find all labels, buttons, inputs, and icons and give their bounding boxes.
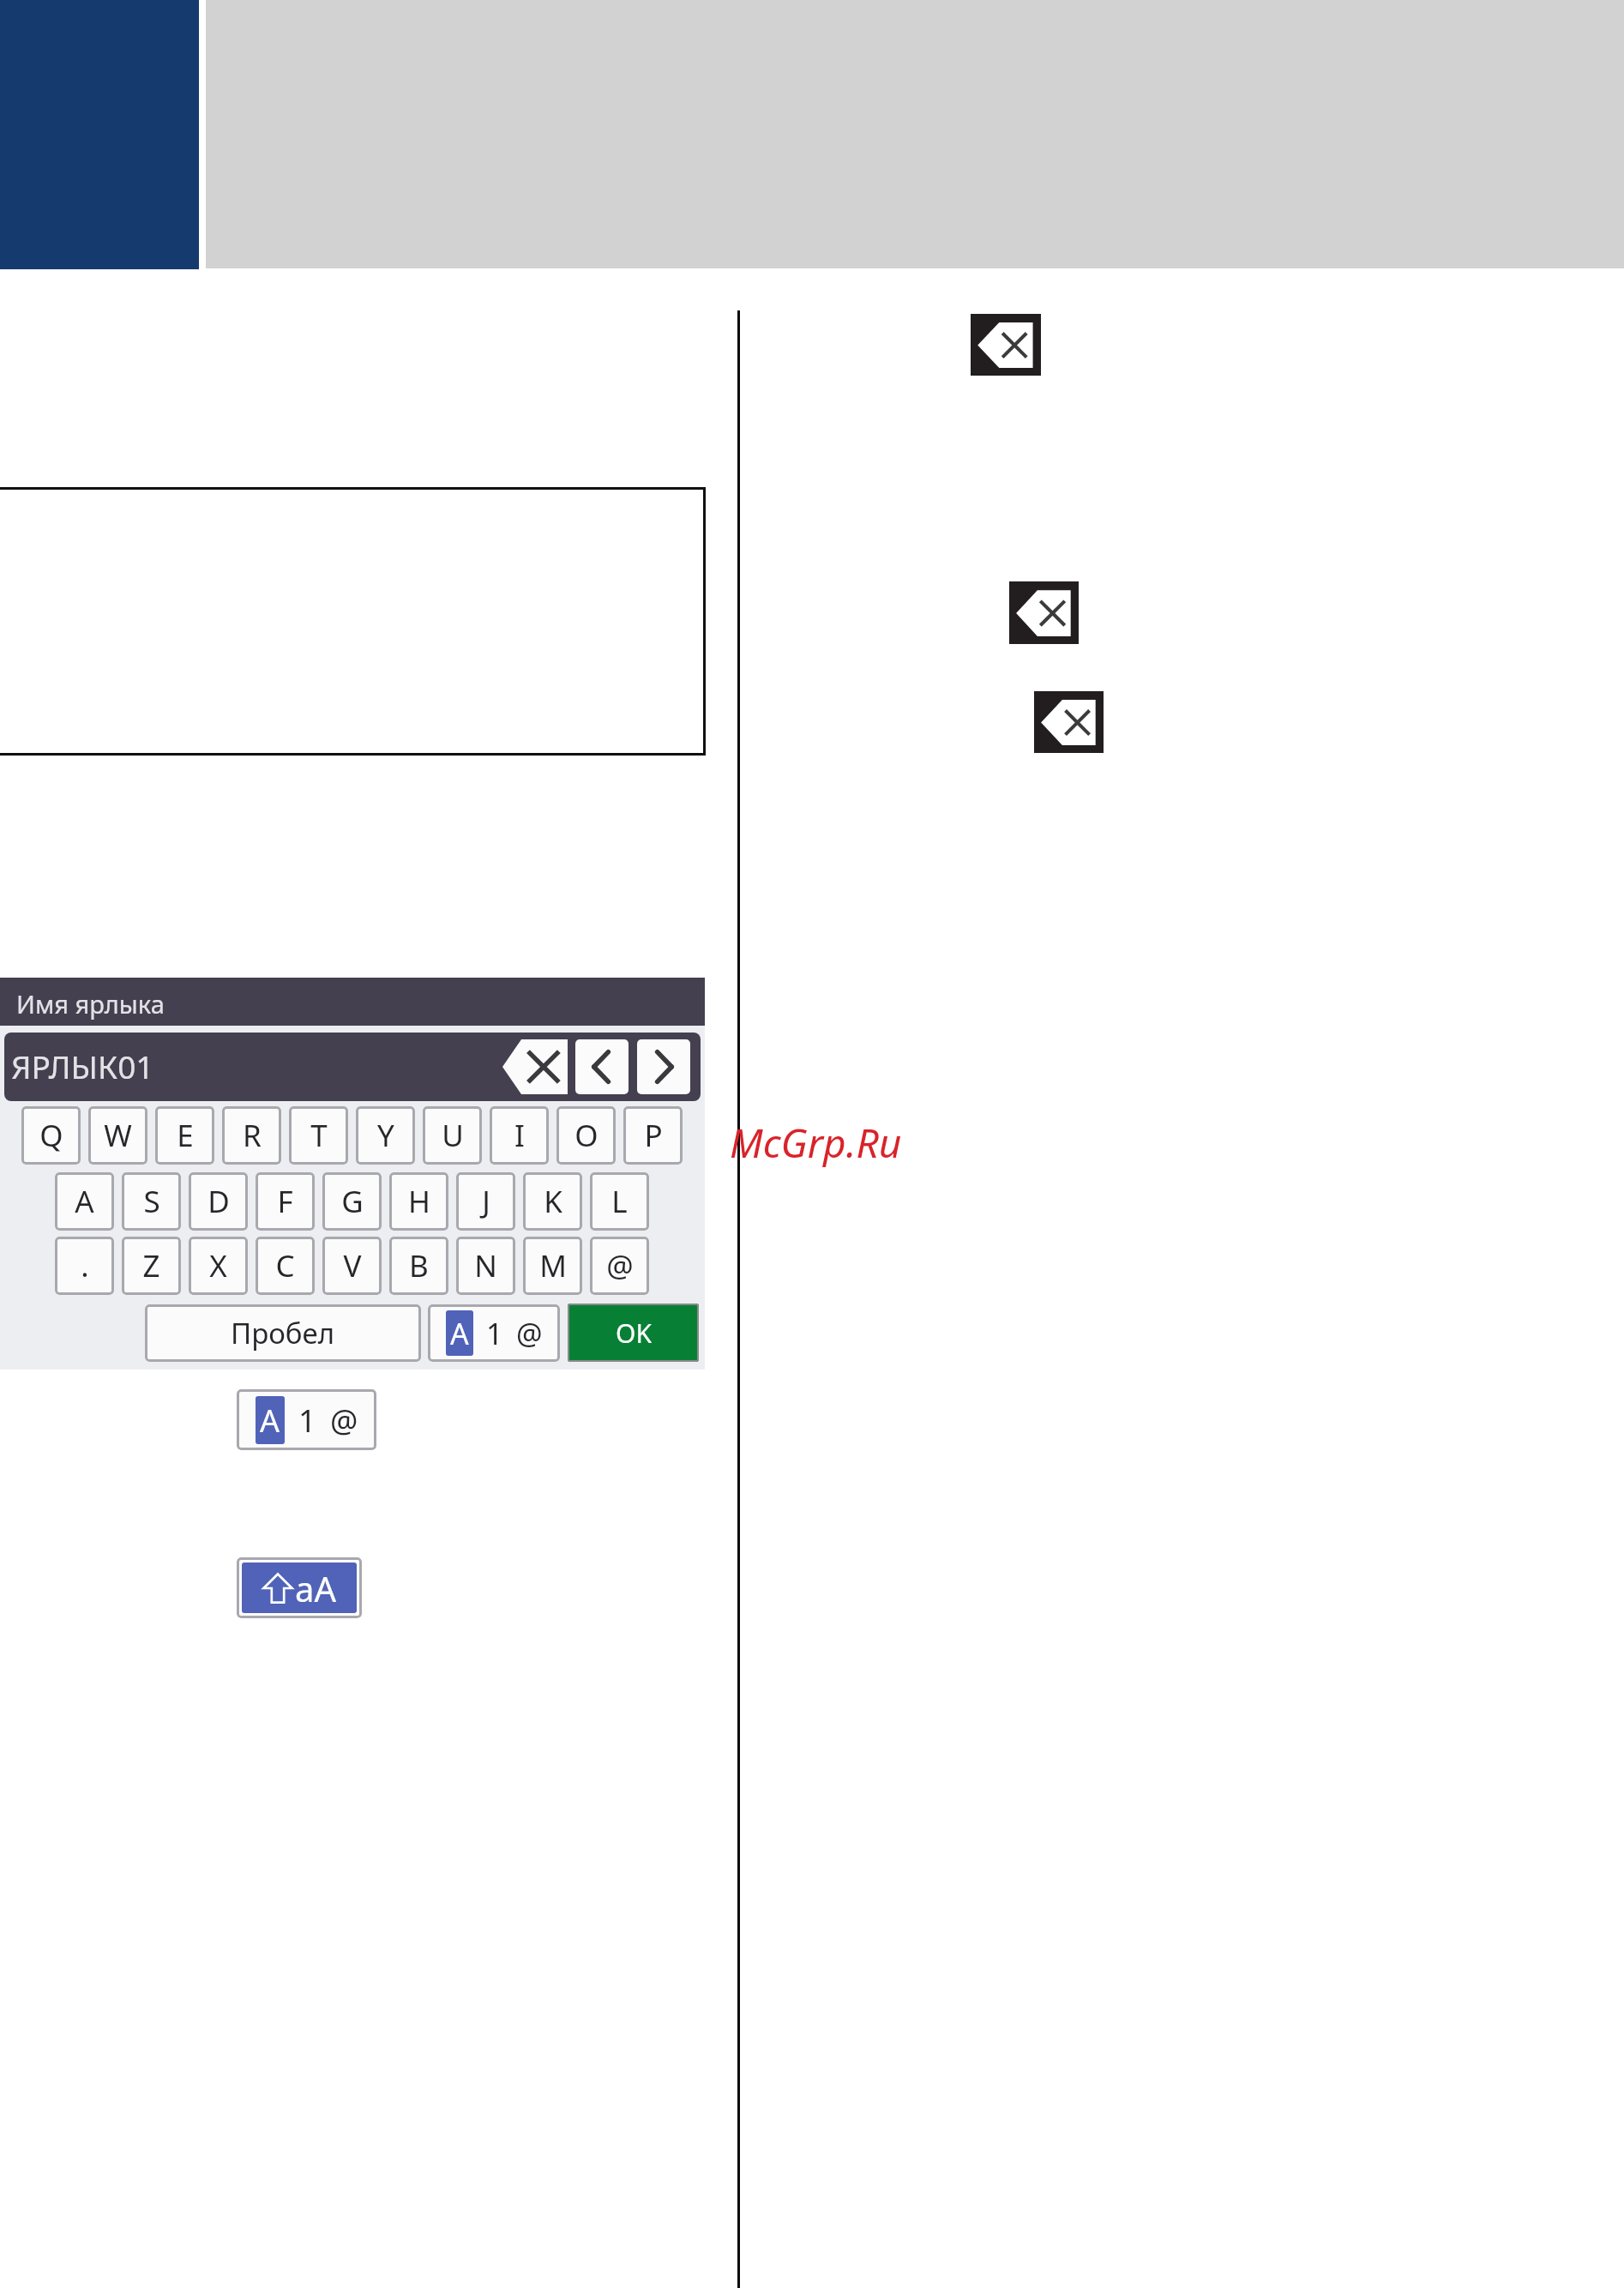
- button[interactable]: Пробел: [145, 1304, 421, 1362]
- button[interactable]: OK: [568, 1304, 699, 1362]
- staticText: M: [539, 1245, 567, 1286]
- button[interactable]: A: [237, 1389, 376, 1450]
- button[interactable]: Shift to upper case: [237, 1557, 362, 1618]
- button[interactable]: X: [189, 1237, 248, 1295]
- staticText: Имя ярлыка: [16, 987, 165, 1021]
- button[interactable]: H: [389, 1172, 448, 1231]
- button[interactable]: Backspace: [971, 314, 1041, 376]
- button[interactable]: V: [322, 1237, 382, 1295]
- staticText: X: [209, 1245, 227, 1286]
- button[interactable]: B: [389, 1237, 448, 1295]
- button[interactable]: A: [55, 1172, 114, 1231]
- staticText: T: [310, 1115, 328, 1156]
- staticText: O: [574, 1115, 598, 1156]
- staticText: P: [644, 1115, 663, 1156]
- staticText: B: [409, 1245, 429, 1286]
- button[interactable]: R: [222, 1106, 281, 1165]
- button[interactable]: Y: [356, 1106, 415, 1165]
- staticText: OK: [616, 1316, 652, 1351]
- staticText: H: [408, 1181, 430, 1222]
- staticText: U: [442, 1115, 464, 1156]
- staticText: McGrp.Ru: [730, 1116, 902, 1170]
- button[interactable]: G: [322, 1172, 382, 1231]
- staticText: @: [606, 1245, 634, 1286]
- button[interactable]: F: [256, 1172, 315, 1231]
- button[interactable]: Move cursor left: [575, 1039, 629, 1094]
- button[interactable]: W: [88, 1106, 147, 1165]
- staticText: A: [260, 1400, 280, 1442]
- button[interactable]: S: [122, 1172, 181, 1231]
- staticText: G: [341, 1181, 364, 1222]
- staticText: 1: [486, 1314, 503, 1353]
- button[interactable]: Backspace: [502, 1039, 568, 1094]
- staticText: R: [243, 1115, 262, 1156]
- button[interactable]: N: [456, 1237, 515, 1295]
- button[interactable]: C: [256, 1237, 315, 1295]
- button[interactable]: L: [590, 1172, 649, 1231]
- staticText: 1: [298, 1400, 316, 1442]
- staticText: V: [343, 1245, 362, 1286]
- staticText: @: [330, 1400, 358, 1442]
- staticText: K: [544, 1181, 562, 1222]
- button[interactable]: U: [423, 1106, 482, 1165]
- staticText: F: [277, 1181, 293, 1222]
- button[interactable]: Backspace: [1009, 581, 1079, 644]
- button[interactable]: M: [523, 1237, 582, 1295]
- button[interactable]: Z: [122, 1237, 181, 1295]
- button[interactable]: O: [556, 1106, 616, 1165]
- button[interactable]: @: [590, 1237, 649, 1295]
- staticText: A: [450, 1314, 469, 1353]
- staticText: aA: [295, 1565, 336, 1611]
- staticText: S: [143, 1181, 160, 1222]
- button[interactable]: A: [428, 1304, 560, 1362]
- staticText: E: [177, 1115, 194, 1156]
- staticText: @: [516, 1314, 543, 1353]
- staticText: Y: [377, 1115, 394, 1156]
- staticText: N: [474, 1245, 497, 1286]
- button[interactable]: I: [490, 1106, 549, 1165]
- staticText: Q: [39, 1115, 63, 1156]
- button[interactable]: T: [289, 1106, 348, 1165]
- button[interactable]: Backspace: [1034, 691, 1104, 753]
- button[interactable]: J: [456, 1172, 515, 1231]
- staticText: W: [104, 1115, 132, 1156]
- staticText: L: [611, 1181, 628, 1222]
- staticText: J: [482, 1181, 490, 1222]
- staticText: A: [75, 1181, 94, 1222]
- button[interactable]: P: [623, 1106, 683, 1165]
- staticText: .: [81, 1245, 89, 1286]
- button[interactable]: K: [523, 1172, 582, 1231]
- button[interactable]: Move cursor right: [637, 1039, 690, 1094]
- staticText: C: [275, 1245, 295, 1286]
- button[interactable]: Q: [21, 1106, 81, 1165]
- button[interactable]: D: [189, 1172, 248, 1231]
- staticText: D: [208, 1181, 230, 1222]
- button[interactable]: E: [155, 1106, 214, 1165]
- staticText: Пробел: [231, 1314, 335, 1352]
- button[interactable]: .: [55, 1237, 114, 1295]
- staticText: Z: [142, 1245, 160, 1286]
- staticText: I: [514, 1115, 525, 1156]
- staticText: ЯРЛЫК01: [11, 1045, 154, 1087]
